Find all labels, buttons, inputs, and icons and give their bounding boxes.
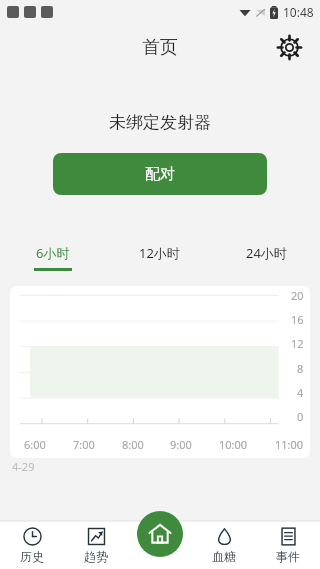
staticText: 16: [291, 312, 304, 327]
button[interactable]: 24小时: [213, 240, 320, 274]
staticText: 20: [291, 288, 304, 303]
button[interactable]: 配对: [53, 153, 267, 195]
staticText: 历史: [20, 549, 44, 564]
button[interactable]: 血糖: [192, 521, 256, 569]
button[interactable]: 6小时: [0, 240, 106, 274]
staticText: 0: [297, 409, 304, 424]
button[interactable]: Settings: [272, 30, 306, 64]
staticText: 10:00: [219, 437, 248, 452]
staticText: 12: [291, 336, 304, 351]
staticText: 配对: [145, 165, 175, 184]
staticText: 24小时: [246, 244, 287, 262]
staticText: 6小时: [36, 244, 70, 262]
staticText: 9:00: [170, 437, 192, 452]
staticText: 未绑定发射器: [0, 112, 320, 133]
staticText: 血糖: [212, 549, 236, 564]
staticText: 事件: [276, 549, 300, 564]
button[interactable]: Home: [137, 511, 183, 557]
staticText: 4: [297, 385, 304, 400]
staticText: 12小时: [139, 244, 180, 262]
button[interactable]: 12小时: [106, 240, 213, 274]
staticText: 首页: [142, 36, 178, 59]
staticText: 趋势: [84, 549, 108, 564]
staticText: 7:00: [73, 437, 95, 452]
button[interactable]: 历史: [0, 521, 64, 569]
staticText: 4-29: [12, 459, 35, 474]
staticText: 11:00: [275, 437, 304, 452]
staticText: 8:00: [122, 437, 144, 452]
button[interactable]: 趋势: [64, 521, 128, 569]
staticText: 10:48: [283, 4, 314, 20]
button[interactable]: 事件: [256, 521, 320, 569]
staticText: 8: [297, 361, 304, 376]
staticText: 6:00: [24, 437, 46, 452]
